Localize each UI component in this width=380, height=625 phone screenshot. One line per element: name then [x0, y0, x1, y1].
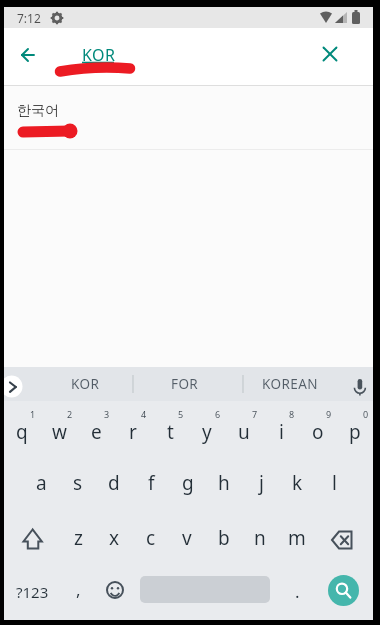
staticText: 5	[178, 408, 184, 420]
staticText: u	[238, 419, 250, 445]
button[interactable]: v	[169, 511, 205, 565]
staticText: 한국어	[17, 102, 59, 120]
staticText: j	[259, 470, 264, 496]
staticText: 2	[67, 408, 73, 420]
staticText: p	[349, 419, 361, 445]
staticText: b	[218, 525, 230, 551]
button[interactable]: j	[243, 456, 279, 510]
button[interactable]: l	[316, 456, 352, 510]
staticText: 6	[215, 408, 221, 420]
button[interactable]: 한국어	[4, 86, 373, 149]
button[interactable]: o	[300, 405, 336, 459]
button[interactable]	[314, 38, 346, 70]
button[interactable]: p	[337, 405, 373, 459]
staticText: g	[182, 470, 194, 496]
button[interactable]: b	[206, 511, 242, 565]
button[interactable]: i	[263, 405, 299, 459]
staticText: KOR	[71, 375, 100, 393]
button[interactable]: t	[152, 405, 188, 459]
staticText: a	[36, 470, 47, 496]
button[interactable]: m	[279, 511, 315, 565]
staticText: r	[129, 419, 137, 445]
staticText: 7:12	[17, 10, 41, 26]
staticText: x	[109, 525, 120, 551]
staticText: .	[295, 580, 300, 603]
staticText: 8	[289, 408, 295, 420]
staticText: ,	[76, 578, 81, 601]
button[interactable]: x	[96, 511, 132, 565]
staticText: h	[218, 470, 230, 496]
button[interactable]	[8, 511, 52, 565]
button[interactable]: e	[78, 405, 114, 459]
staticText: w	[52, 419, 67, 445]
staticText: f	[148, 470, 155, 496]
button[interactable]: u	[226, 405, 262, 459]
staticText: d	[108, 470, 120, 496]
staticText: z	[74, 525, 83, 551]
button[interactable]	[328, 575, 359, 606]
button[interactable]: k	[279, 456, 315, 510]
button[interactable]: .	[279, 564, 315, 618]
staticText: l	[332, 470, 337, 496]
staticText: 9	[326, 408, 332, 420]
button[interactable]	[321, 511, 365, 565]
button[interactable]: q	[4, 405, 40, 459]
button[interactable]: g	[170, 456, 206, 510]
staticText: y	[202, 419, 212, 445]
staticText: KOREAN	[262, 375, 318, 393]
button[interactable]: h	[206, 456, 242, 510]
button[interactable]: FOR	[145, 367, 225, 401]
staticText: 3	[104, 408, 110, 420]
button[interactable]: d	[96, 456, 132, 510]
staticText: FOR	[171, 375, 199, 393]
staticText: n	[254, 525, 266, 551]
staticText: q	[16, 419, 28, 445]
staticText: 7	[252, 408, 258, 420]
staticText: i	[279, 419, 284, 445]
staticText: 4	[141, 408, 147, 420]
staticText: c	[146, 525, 156, 551]
button[interactable]: y	[189, 405, 225, 459]
button[interactable]: a	[23, 456, 59, 510]
button[interactable]: KOR	[45, 367, 125, 401]
staticText: t	[167, 419, 174, 445]
button[interactable]: KOREAN	[250, 367, 330, 401]
staticText: 0	[363, 408, 369, 420]
button[interactable]	[344, 367, 373, 401]
button[interactable]: ?123	[10, 565, 54, 619]
staticText: k	[292, 470, 303, 496]
button[interactable]: z	[60, 511, 96, 565]
staticText: m	[288, 525, 306, 551]
button[interactable]: f	[133, 456, 169, 510]
button[interactable]: r	[115, 405, 151, 459]
button[interactable]	[93, 564, 137, 618]
staticText: KOR	[82, 44, 116, 66]
staticText: v	[182, 525, 192, 551]
staticText: 1	[30, 408, 36, 420]
button[interactable]: n	[242, 511, 278, 565]
staticText: s	[73, 470, 83, 496]
button[interactable]: c	[133, 511, 169, 565]
button[interactable]	[11, 37, 43, 69]
button[interactable]: ,	[60, 562, 96, 616]
button[interactable]: s	[60, 456, 96, 510]
staticText: e	[91, 419, 102, 445]
button[interactable]: w	[41, 405, 77, 459]
staticText: ?123	[16, 582, 49, 602]
staticText: o	[312, 419, 324, 445]
